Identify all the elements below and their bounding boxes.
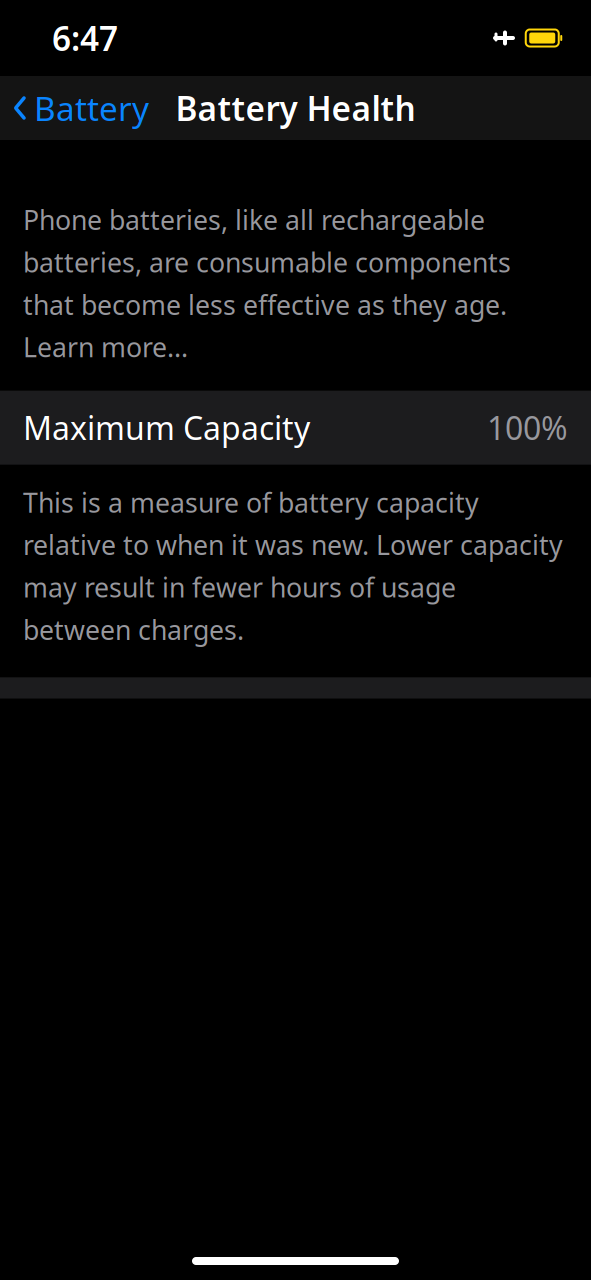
button[interactable]: Maximum Capacity [0, 391, 591, 465]
staticText: Peak Performance Capability [23, 693, 453, 736]
staticText: Battery [34, 86, 149, 130]
staticText: 100% [487, 406, 568, 449]
staticText: Phone batteries, like all rechargeable b… [23, 202, 511, 365]
staticText: Maximum Capacity [23, 406, 310, 449]
button[interactable]: Peak Performance Capability [0, 677, 591, 751]
staticText: This is a measure of battery capacity re… [23, 485, 563, 647]
staticText: 6:47 [52, 16, 118, 60]
staticText: Battery Health [175, 86, 415, 130]
button[interactable]: Battery [0, 78, 159, 138]
